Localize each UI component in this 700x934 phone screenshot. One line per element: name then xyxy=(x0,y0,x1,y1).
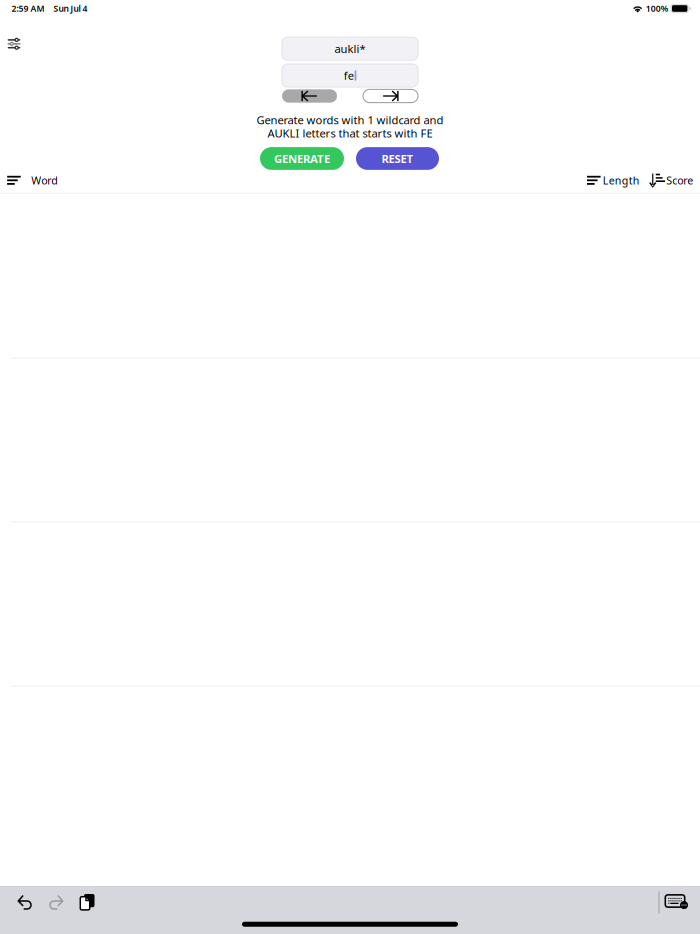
button[interactable]: Next field xyxy=(363,89,418,103)
button[interactable]: Length xyxy=(583,169,644,191)
staticText: aukli* xyxy=(334,41,365,56)
button[interactable]: Undo xyxy=(9,886,40,918)
button[interactable]: Previous field xyxy=(282,89,337,103)
button[interactable]: Hide keyboard xyxy=(659,886,693,918)
button[interactable]: Paste xyxy=(71,886,102,918)
button[interactable]: Score xyxy=(642,169,700,191)
staticText: AUKLI letters that starts with FE xyxy=(267,126,432,141)
staticText: Score xyxy=(666,173,693,187)
staticText: Length xyxy=(603,173,640,187)
button[interactable]: GENERATE xyxy=(260,147,344,170)
button[interactable]: Redo xyxy=(40,886,71,918)
button[interactable]: Word xyxy=(1,169,66,191)
staticText: 100% xyxy=(646,3,669,14)
staticText: Word xyxy=(31,173,58,187)
staticText: RESET xyxy=(381,151,413,166)
staticText: Generate words with 1 wildcard and xyxy=(256,112,443,127)
staticText: GENERATE xyxy=(274,151,330,166)
staticText: 2:59 AM xyxy=(11,3,44,14)
staticText: Sun Jul 4 xyxy=(53,3,87,14)
staticText: fe xyxy=(344,68,354,83)
button[interactable]: RESET xyxy=(356,147,439,170)
button[interactable]: Settings xyxy=(0,30,28,58)
